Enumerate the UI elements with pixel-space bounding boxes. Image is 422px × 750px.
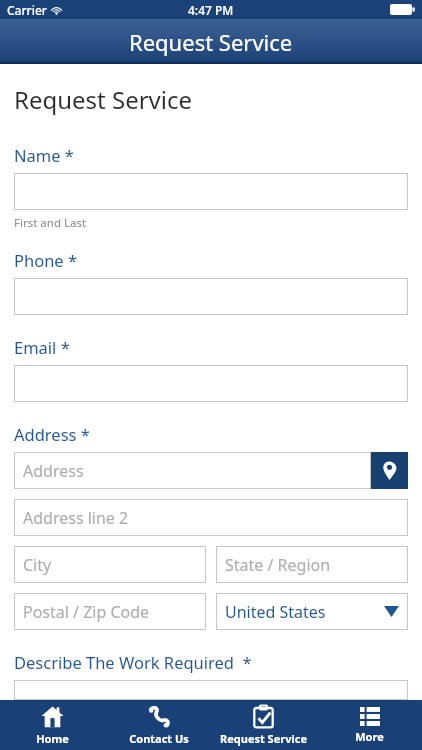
staticText: More	[355, 729, 384, 744]
staticText: 4:47 PM	[188, 2, 234, 18]
staticText: United States	[225, 601, 326, 623]
button[interactable]: Home	[0, 700, 105, 750]
staticText: Request Service	[14, 83, 193, 116]
button[interactable]: Contact Us	[106, 700, 211, 750]
button[interactable]: Request Service	[211, 700, 316, 750]
button[interactable]	[14, 278, 408, 315]
staticText: Email *	[14, 336, 70, 358]
button[interactable]: Use current location	[371, 452, 408, 489]
button[interactable]	[14, 173, 408, 210]
button[interactable]: Postal / Zip Code	[14, 593, 206, 630]
staticText: Postal / Zip Code	[23, 601, 150, 623]
button[interactable]: Address	[14, 452, 371, 489]
staticText: Describe The Work Required *	[14, 651, 252, 673]
button[interactable]: Address line 2	[14, 499, 408, 536]
staticText: Name *	[14, 144, 74, 166]
button[interactable]: City	[14, 546, 206, 583]
staticText: Home	[36, 731, 69, 746]
staticText: Request Service	[129, 27, 293, 57]
button[interactable]	[14, 365, 408, 402]
staticText: City	[23, 554, 52, 576]
staticText: Contact Us	[129, 731, 189, 746]
button[interactable]	[14, 680, 408, 700]
staticText: Address line 2	[23, 507, 129, 529]
staticText: Address *	[14, 423, 90, 445]
staticText: Address	[23, 460, 84, 482]
staticText: Phone *	[14, 249, 78, 271]
staticText: First and Last	[14, 215, 87, 231]
staticText: Carrier	[7, 2, 47, 18]
staticText: State / Region	[225, 554, 331, 576]
button[interactable]: More	[317, 700, 422, 750]
button[interactable]: State / Region	[216, 546, 408, 583]
button[interactable]: United States	[216, 593, 408, 630]
staticText: Request Service	[220, 731, 307, 746]
